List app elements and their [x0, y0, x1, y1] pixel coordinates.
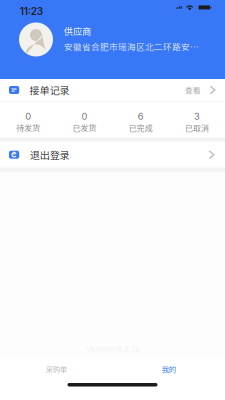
staticText: 3	[194, 111, 200, 122]
staticText: 查看	[185, 84, 201, 96]
staticText: 安徽省合肥市瑶海区北二环路安徽国际…	[64, 40, 206, 53]
button[interactable]: 采购单	[0, 357, 112, 381]
button[interactable]: 3	[169, 102, 225, 138]
staticText: 已完成	[129, 122, 153, 134]
staticText: 11:23	[20, 5, 43, 17]
staticText: Version:9.8.13	[86, 344, 139, 354]
staticText: 待发货	[16, 122, 40, 134]
staticText: 退出登录	[30, 147, 70, 162]
button[interactable]: 退出登录	[0, 142, 225, 168]
staticText: 0	[25, 111, 31, 122]
button[interactable]: 接单记录	[0, 79, 225, 101]
button[interactable]: 0	[56, 102, 112, 138]
staticText: 6	[138, 111, 144, 122]
staticText: 接单记录	[30, 83, 70, 97]
staticText: 采购单	[46, 364, 67, 374]
staticText: 我的	[162, 364, 176, 374]
button[interactable]: 0	[0, 102, 56, 138]
staticText: 供应商	[64, 24, 91, 38]
button[interactable]: 我的	[112, 357, 225, 381]
staticText: 已取消	[185, 122, 209, 134]
staticText: 已发货	[72, 122, 96, 134]
button[interactable]: 供应商	[0, 22, 225, 56]
staticText: 0	[81, 111, 87, 122]
button[interactable]: 6	[112, 102, 169, 138]
